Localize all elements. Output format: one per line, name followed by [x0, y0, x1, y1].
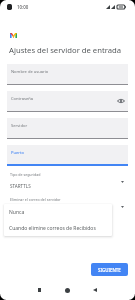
staticText: SIGUIENTE	[98, 267, 121, 273]
button[interactable]: Puerto	[7, 145, 128, 166]
button[interactable]: Tipo de seguridad	[0, 172, 135, 190]
button[interactable]: Nunca	[4, 204, 112, 220]
staticText: Nunca	[10, 208, 24, 214]
button[interactable]: Inicio	[56, 280, 78, 300]
staticText: Nunca	[9, 209, 25, 216]
staticText: Nombre de usuario	[11, 69, 49, 75]
other: Abrir menú Tipo de seguridad	[119, 179, 125, 185]
other: Abrir menú Eliminar el correo del servid…	[119, 204, 125, 210]
staticText: Cuando elimine correos de Recibidos	[9, 225, 96, 232]
button[interactable]: Eliminar el correo del servidor	[0, 197, 135, 215]
button[interactable]: SIGUIENTE	[91, 263, 128, 276]
button[interactable]: Atrás	[84, 280, 106, 300]
staticText: Ajustes del servidor de entrada	[9, 45, 122, 55]
staticText: Tipo de seguridad	[10, 172, 41, 177]
staticText: Contraseña	[11, 96, 34, 102]
button[interactable]: Cuando elimine correos de Recibidos	[4, 220, 112, 236]
staticText: Servidor	[11, 123, 28, 129]
button[interactable]: Recientes	[28, 280, 50, 300]
staticText: 10:00	[17, 4, 29, 10]
staticText: Eliminar el correo del servidor	[10, 197, 61, 202]
staticText: STARTTLS	[10, 183, 31, 189]
button[interactable]: Mostrar contraseña	[117, 97, 125, 105]
staticText: Puerto	[11, 150, 24, 156]
button[interactable]: Nombre de usuario	[7, 64, 128, 85]
button[interactable]: Contraseña	[7, 91, 128, 112]
button[interactable]: Servidor	[7, 118, 128, 139]
